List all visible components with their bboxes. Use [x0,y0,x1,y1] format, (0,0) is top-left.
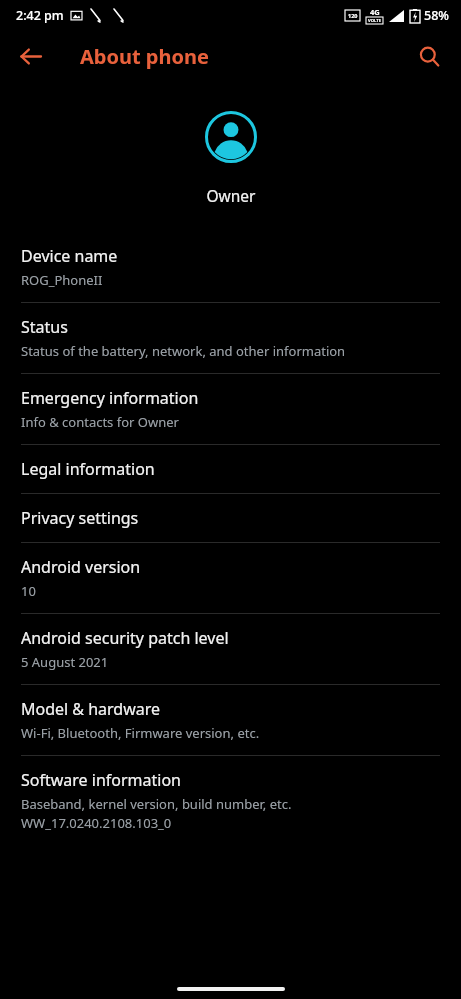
staticText: 4G [370,7,380,17]
button[interactable]: Android version [0,543,461,613]
staticText: Legal information [21,458,155,480]
button[interactable]: Privacy settings [0,494,461,542]
staticText: Android version [21,556,141,578]
staticText: 2:42 pm [16,7,64,24]
button[interactable]: Status [0,303,461,373]
staticText: 58% [424,7,449,24]
button[interactable]: Emergency information [0,374,461,444]
staticText: WW_17.0240.2108.103_0 [21,814,172,832]
staticText: Baseband, kernel version, build number, … [21,795,292,813]
button[interactable]: Android security patch level [0,614,461,684]
staticText: Wi-Fi, Bluetooth, Firmware version, etc. [21,724,260,742]
staticText: VOLTE [368,18,382,24]
staticText: Status [21,316,68,338]
staticText: Model & hardware [21,698,161,720]
staticText: Software information [21,769,181,791]
staticText: 5 August 2021 [21,653,109,671]
button[interactable]: Device name [0,232,461,302]
staticText: Status of the battery, network, and othe… [21,342,346,360]
staticText: Device name [21,245,118,267]
staticText: Info & contacts for Owner [21,413,179,431]
staticText: Owner [206,185,256,206]
button[interactable]: Search [407,34,451,78]
staticText: Emergency information [21,387,199,409]
staticText: 10 [21,582,36,600]
staticText: Privacy settings [21,507,139,529]
staticText: About phone [80,43,209,70]
button[interactable]: Model & hardware [0,685,461,755]
button[interactable]: Legal information [0,445,461,493]
staticText: ROG_PhoneII [21,271,103,289]
staticText: 120 [348,12,358,19]
button[interactable]: Back [8,34,52,78]
staticText: Android security patch level [21,627,229,649]
button[interactable]: Software information [0,756,461,845]
